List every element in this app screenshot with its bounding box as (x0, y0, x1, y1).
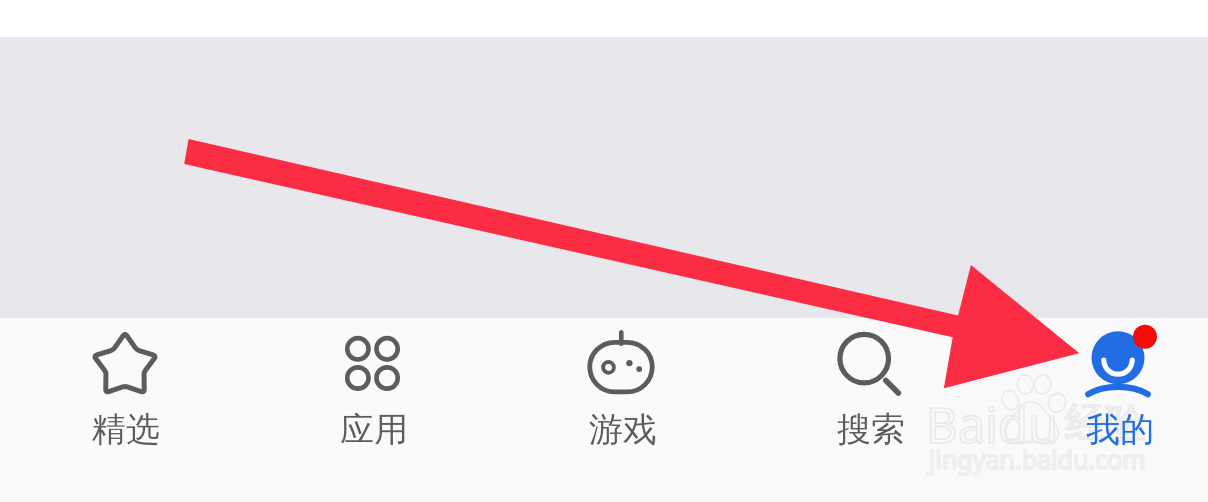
staticText: 应用 (340, 408, 408, 451)
button[interactable]: 精选 Featured tab (0, 318, 248, 502)
button[interactable]: 游戏 Games tab (497, 318, 745, 502)
staticText: 精选 (92, 408, 160, 451)
staticText: jingyan.baidu.com (929, 442, 1146, 476)
staticText: Baidu (926, 391, 1059, 458)
staticText: 经验 (1065, 398, 1147, 450)
button[interactable]: 搜索 Search tab (745, 318, 993, 502)
button[interactable]: 应用 Apps tab (248, 318, 496, 502)
staticText: 我的 (1086, 408, 1154, 451)
button[interactable]: 我的 Mine tab, selected (994, 318, 1208, 502)
staticText: 搜索 (837, 408, 905, 451)
staticText: 游戏 (589, 408, 657, 451)
